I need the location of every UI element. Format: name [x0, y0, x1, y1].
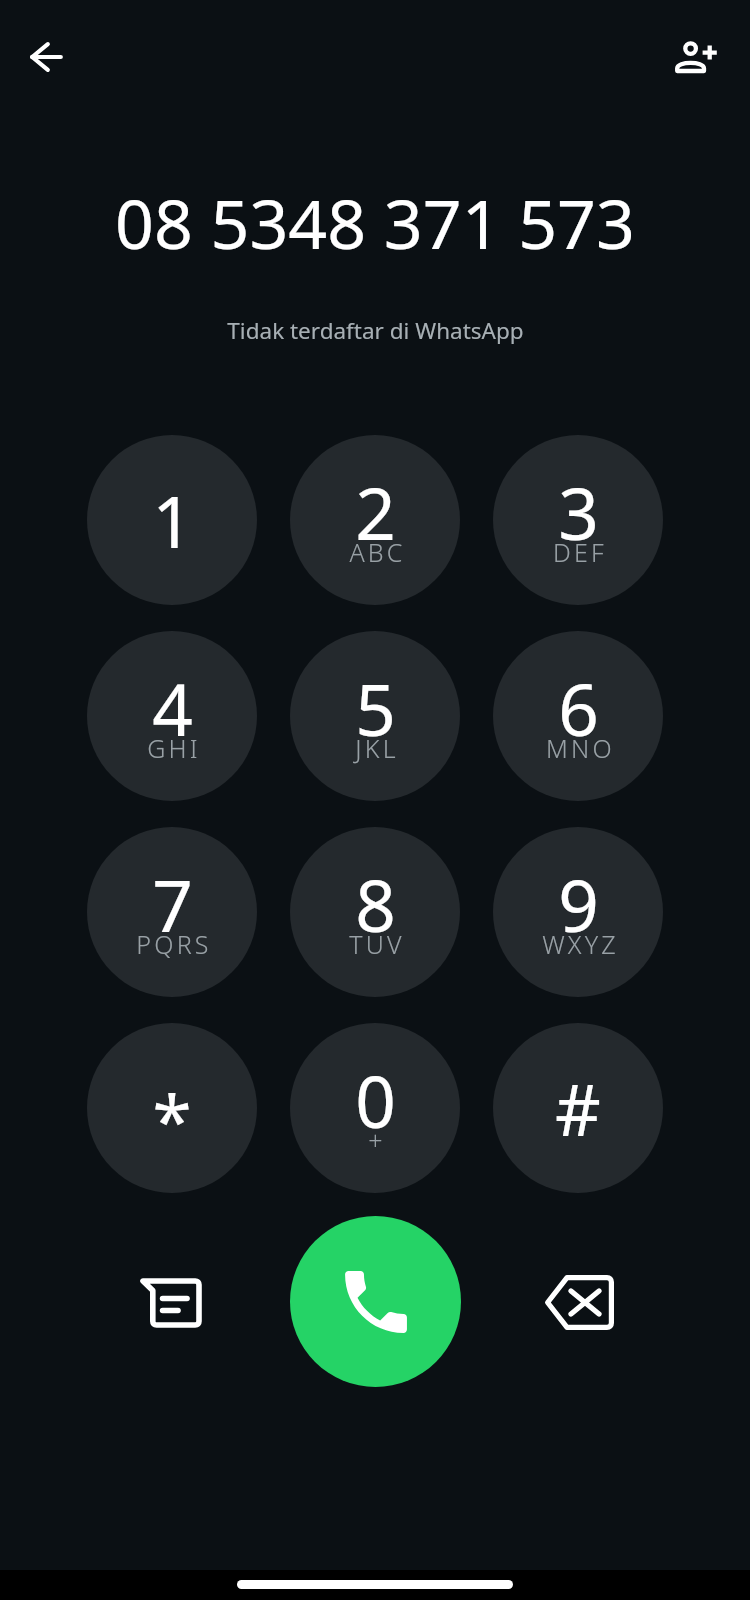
- staticText: 6: [558, 660, 599, 757]
- button[interactable]: 6: [493, 631, 663, 801]
- staticText: WXYZ: [542, 927, 619, 961]
- staticText: 9: [558, 856, 599, 953]
- staticText: 0: [355, 1052, 396, 1149]
- button[interactable]: Add contact: [663, 23, 729, 89]
- staticText: 2: [355, 464, 396, 561]
- button[interactable]: 3: [493, 435, 663, 605]
- staticText: 7: [152, 856, 193, 953]
- button[interactable]: 9: [493, 827, 663, 997]
- staticText: +: [368, 1123, 386, 1157]
- staticText: 1: [152, 472, 193, 569]
- button[interactable]: *: [87, 1023, 257, 1193]
- staticText: Tidak terdaftar di WhatsApp: [227, 315, 524, 346]
- staticText: MNO: [546, 731, 615, 765]
- staticText: JKL: [355, 731, 399, 765]
- staticText: 4: [152, 660, 193, 757]
- staticText: PQRS: [136, 927, 212, 961]
- staticText: 5: [355, 660, 396, 757]
- staticText: #: [555, 1060, 601, 1157]
- button[interactable]: #: [493, 1023, 663, 1193]
- button[interactable]: Back: [15, 25, 78, 88]
- button[interactable]: Backspace: [519, 1242, 639, 1362]
- staticText: 08 5348 371 573: [115, 176, 635, 266]
- staticText: GHI: [147, 731, 201, 765]
- button[interactable]: 2: [290, 435, 460, 605]
- button[interactable]: 8: [290, 827, 460, 997]
- button[interactable]: Call: [290, 1216, 461, 1387]
- button[interactable]: 7: [87, 827, 257, 997]
- staticText: 3: [558, 464, 599, 561]
- staticText: TUV: [349, 927, 405, 961]
- button[interactable]: 4: [87, 631, 257, 801]
- button[interactable]: 0: [290, 1023, 460, 1193]
- staticText: *: [152, 1071, 192, 1168]
- staticText: ABC: [349, 535, 406, 569]
- staticText: 8: [355, 856, 396, 953]
- button[interactable]: Message: [111, 1243, 231, 1363]
- button[interactable]: 5: [290, 631, 460, 801]
- button[interactable]: 1: [87, 435, 257, 605]
- staticText: DEF: [553, 535, 607, 569]
